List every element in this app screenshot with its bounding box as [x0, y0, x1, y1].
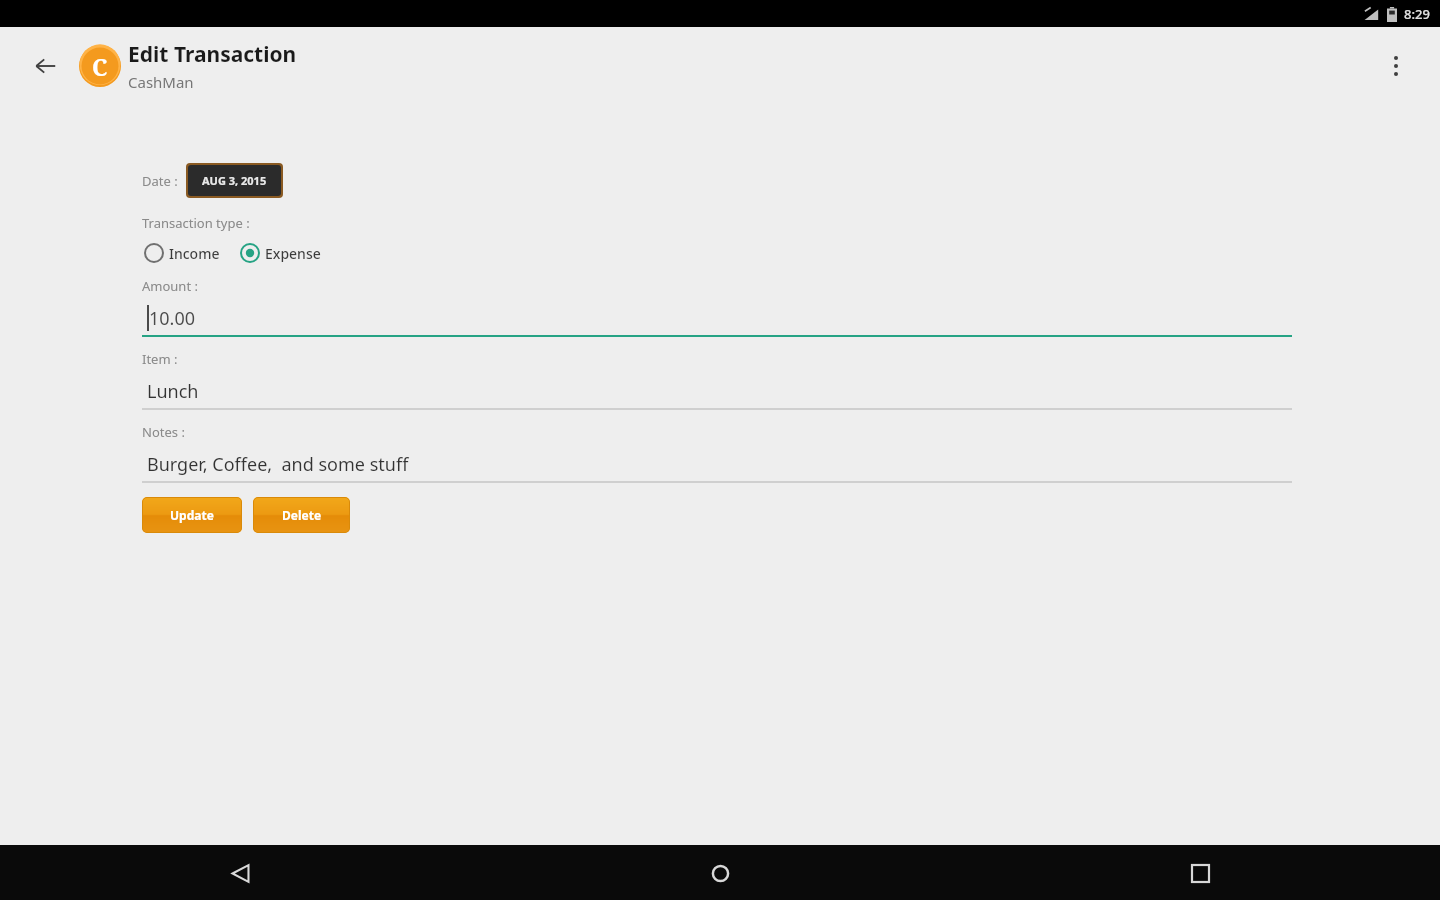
button[interactable]: Back: [216, 849, 264, 897]
staticText: Delete: [282, 507, 322, 523]
staticText: Expense: [265, 244, 321, 263]
button[interactable]: Back: [24, 44, 68, 88]
button[interactable]: Income: [142, 241, 222, 265]
staticText: Notes :: [142, 423, 185, 441]
staticText: Amount :: [142, 277, 198, 295]
button[interactable]: More options: [1374, 44, 1418, 88]
button[interactable]: AUG 3, 2015: [188, 165, 281, 196]
staticText: Income: [169, 244, 220, 263]
button[interactable]: Delete: [253, 497, 350, 533]
staticText: C: [92, 51, 108, 82]
button[interactable]: Recent apps: [1176, 849, 1224, 897]
button[interactable]: Home: [696, 849, 744, 897]
staticText: Burger, Coffee, and some stuff: [147, 452, 409, 477]
staticText: Item :: [142, 350, 178, 368]
staticText: Update: [170, 507, 214, 523]
button[interactable]: Burger, Coffee, and some stuff: [142, 447, 1292, 481]
staticText: Transaction type :: [142, 214, 250, 232]
staticText: Edit Transaction: [128, 40, 297, 69]
button[interactable]: Lunch: [142, 374, 1292, 408]
staticText: AUG 3, 2015: [202, 173, 267, 188]
button[interactable]: Update: [142, 497, 242, 533]
staticText: Date :: [142, 172, 178, 190]
button[interactable]: Expense: [238, 241, 323, 265]
button[interactable]: 10.00: [142, 301, 1292, 335]
staticText: Lunch: [147, 379, 199, 404]
staticText: 10.00: [149, 306, 196, 331]
staticText: CashMan: [128, 72, 194, 92]
staticText: 8:29: [1404, 5, 1430, 23]
